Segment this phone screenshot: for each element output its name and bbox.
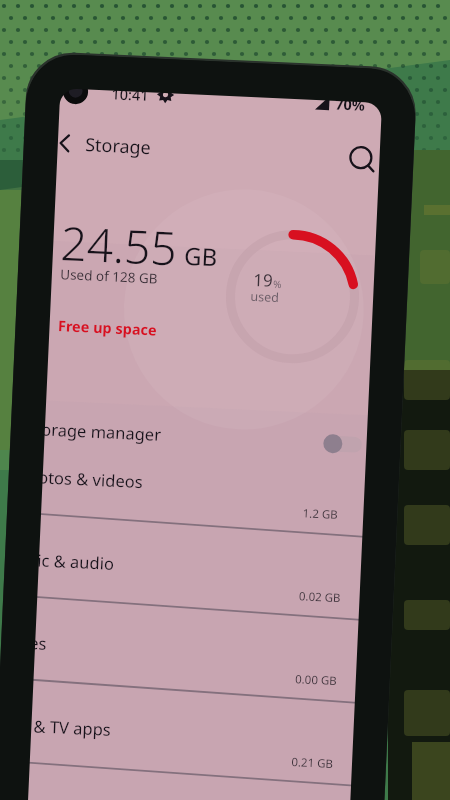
button[interactable] bbox=[10, 412, 382, 468]
button[interactable]: Search bbox=[330, 132, 368, 170]
button[interactable] bbox=[0, 722, 382, 796]
button[interactable] bbox=[0, 640, 382, 714]
button[interactable]: Back bbox=[40, 134, 74, 168]
button[interactable] bbox=[0, 560, 382, 634]
button[interactable] bbox=[40, 318, 170, 348]
button[interactable] bbox=[0, 480, 382, 554]
